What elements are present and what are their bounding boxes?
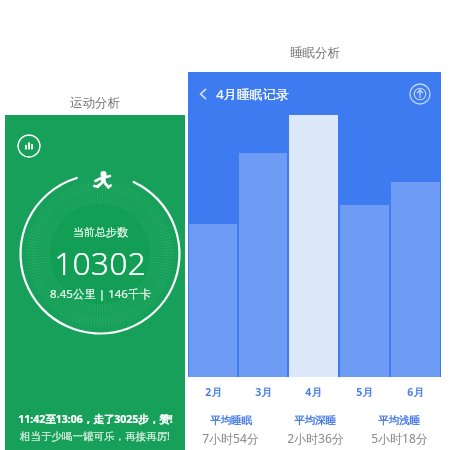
staticText: 2小时36分: [287, 430, 344, 446]
button[interactable]: Statistics: [5, 115, 185, 450]
button[interactable]: Back: [196, 85, 289, 103]
staticText: 平均浅睡: [378, 414, 420, 427]
button[interactable]: Statistics: [17, 134, 41, 158]
button[interactable]: Share: [409, 83, 431, 105]
staticText: 5小时18分: [371, 430, 428, 446]
button[interactable]: 平均深睡: [273, 414, 357, 446]
staticText: 运动分析: [70, 95, 120, 111]
staticText: 4月: [305, 385, 322, 399]
staticText: 平均睡眠: [210, 414, 252, 427]
staticText: 5月: [356, 385, 373, 399]
staticText: 7小时54分: [202, 430, 259, 446]
staticText: 平均深睡: [294, 414, 336, 427]
staticText: 当前总步数: [73, 225, 128, 239]
other: Back: [196, 87, 210, 101]
button[interactable]: 平均睡眠: [188, 414, 273, 446]
staticText: 2月: [205, 385, 222, 399]
staticText: 8.45公里 | 146千卡: [50, 286, 151, 302]
staticText: 睡眠分析: [290, 45, 340, 61]
staticText: 3月: [255, 385, 272, 399]
staticText: 11:42至13:06，走了3025步，赞!: [18, 412, 173, 426]
staticText: 相当于少喝一罐可乐，再接再厉!: [20, 429, 170, 443]
staticText: 6月: [407, 385, 424, 399]
button[interactable]: 平均浅睡: [357, 414, 441, 446]
staticText: 10302: [54, 241, 146, 285]
staticText: 4月睡眠记录: [216, 85, 289, 103]
